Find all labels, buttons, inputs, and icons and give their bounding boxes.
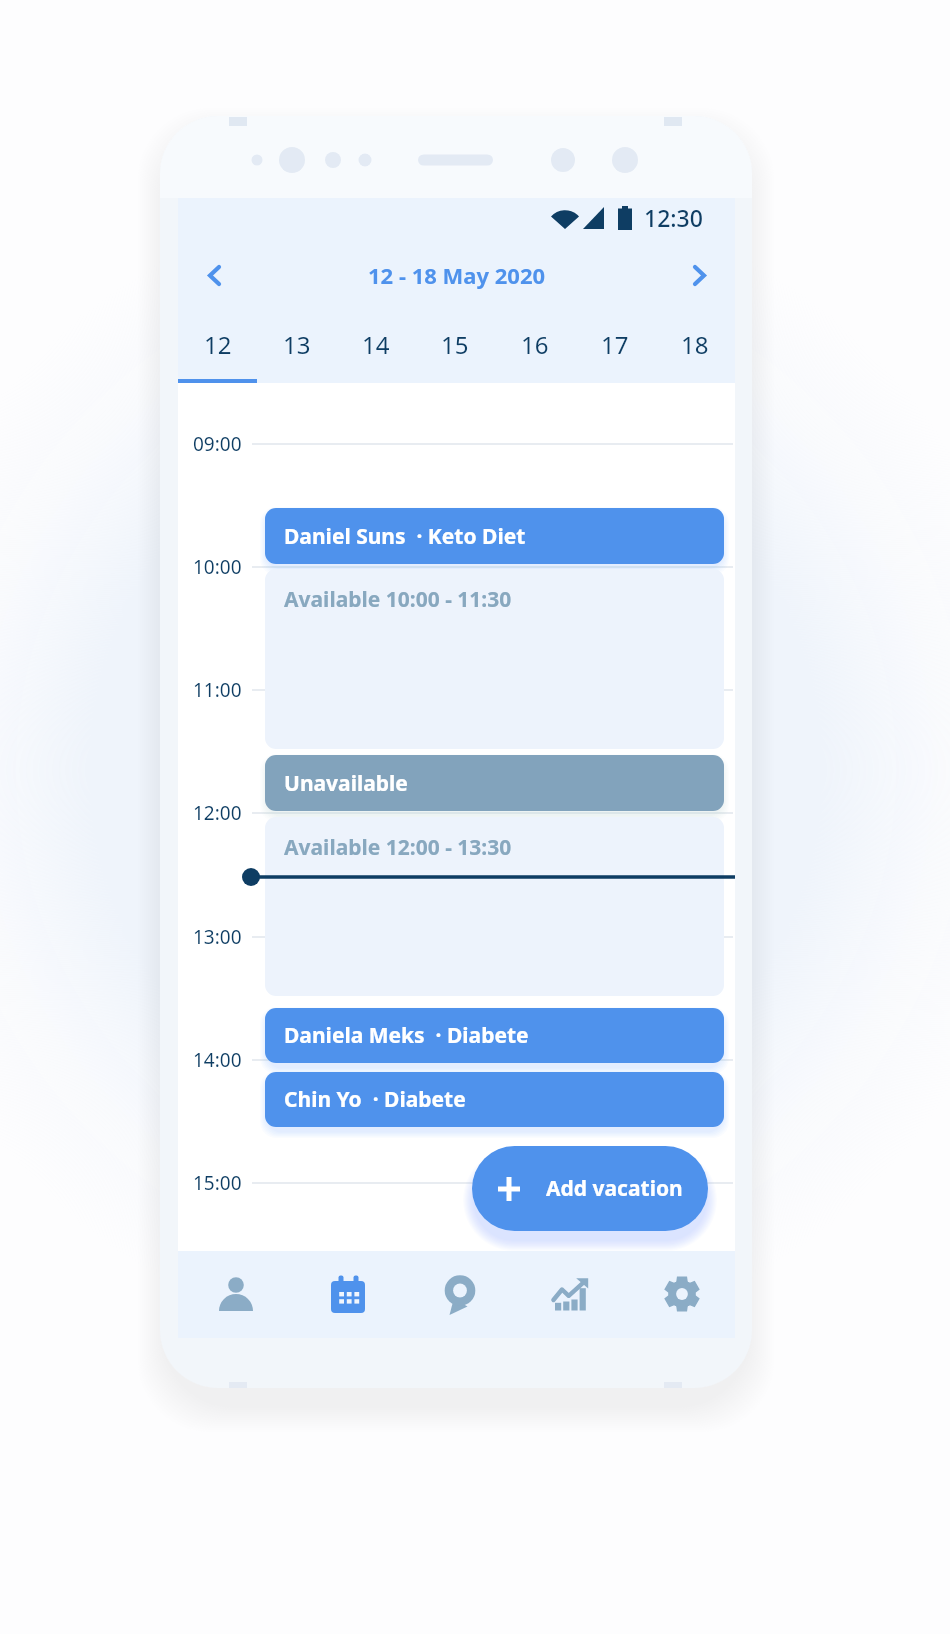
- staticText: Unavailable: [284, 769, 408, 798]
- button[interactable]: Chin Yo · Diabete: [265, 1072, 724, 1127]
- staticText: 12:00: [193, 800, 242, 826]
- staticText: Add vacation: [546, 1174, 683, 1203]
- button[interactable]: Messages: [402, 1251, 513, 1338]
- staticText: 18: [681, 328, 709, 361]
- button[interactable]: Daniela Meks · Diabete: [265, 1008, 724, 1063]
- button[interactable]: 15: [415, 308, 495, 383]
- button[interactable]: Add vacation: [472, 1146, 708, 1231]
- button[interactable]: 13: [257, 308, 336, 383]
- button[interactable]: Profile: [178, 1251, 290, 1338]
- staticText: 13: [283, 328, 311, 361]
- button[interactable]: 14: [336, 308, 415, 383]
- staticText: Available 12:00 - 13:30: [284, 833, 512, 862]
- button[interactable]: Next week: [672, 248, 726, 302]
- button[interactable]: 18: [655, 308, 735, 383]
- button[interactable]: Unavailable: [265, 755, 724, 811]
- staticText: 10:00: [193, 554, 242, 580]
- staticText: Daniela Meks · Diabete: [284, 1021, 529, 1050]
- staticText: 12: [204, 328, 232, 361]
- button[interactable]: Statistics: [513, 1251, 624, 1338]
- button[interactable]: Daniel Suns · Keto Diet: [265, 508, 724, 564]
- staticText: 15:00: [193, 1170, 242, 1196]
- staticText: 11:00: [193, 677, 242, 703]
- button[interactable]: 16: [495, 308, 575, 383]
- staticText: 09:00: [193, 431, 242, 457]
- staticText: 12 - 18 May 2020: [368, 260, 546, 290]
- staticText: Available 10:00 - 11:30: [284, 585, 512, 614]
- button[interactable]: Calendar: [290, 1251, 402, 1338]
- staticText: 14: [362, 328, 390, 361]
- staticText: 12:30: [644, 202, 703, 233]
- staticText: Chin Yo · Diabete: [284, 1085, 466, 1114]
- staticText: 16: [521, 328, 549, 361]
- button[interactable]: 17: [575, 308, 655, 383]
- staticText: 13:00: [193, 924, 242, 950]
- button[interactable]: Previous week: [187, 248, 241, 302]
- button[interactable]: 12: [178, 308, 257, 383]
- button[interactable]: Settings: [624, 1251, 735, 1338]
- staticText: 14:00: [193, 1047, 242, 1073]
- staticText: Daniel Suns · Keto Diet: [284, 522, 526, 551]
- staticText: 15: [441, 328, 469, 361]
- button[interactable]: Available 10:00 - 11:30: [265, 569, 724, 749]
- staticText: 17: [601, 328, 629, 361]
- button[interactable]: Available 12:00 - 13:30: [265, 817, 724, 996]
